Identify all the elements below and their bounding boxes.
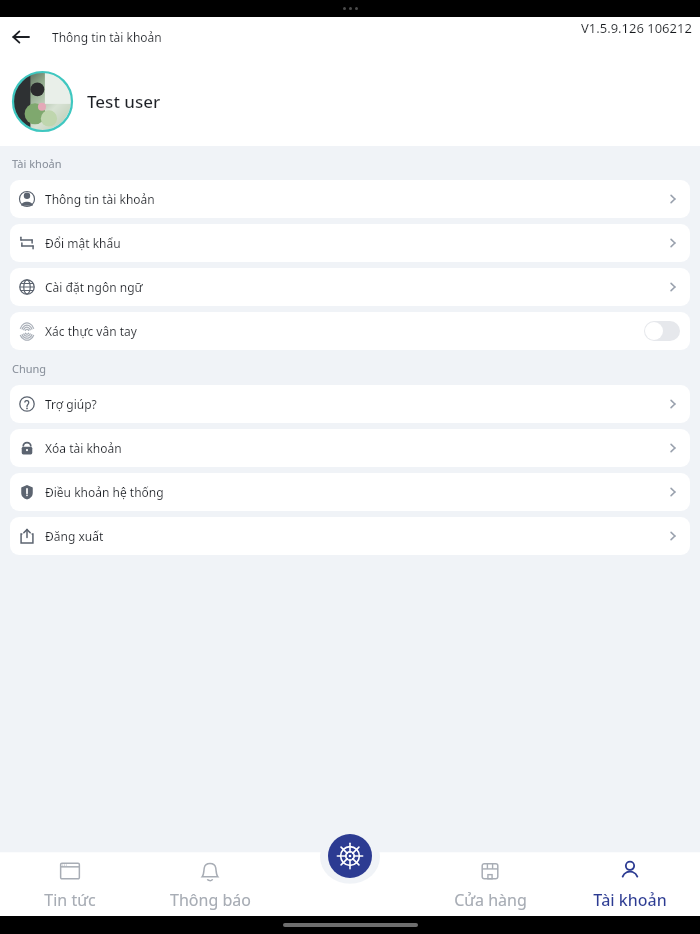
staticText: Thông tin tài khoản	[45, 191, 665, 207]
staticText: Tài khoản	[12, 156, 62, 171]
button[interactable]: Fingerprint toggle	[644, 321, 680, 341]
staticText: Cài đặt ngôn ngữ	[45, 279, 665, 295]
button[interactable]: Điều khoản hệ thống	[10, 473, 690, 511]
button[interactable]: Thông báo	[140, 854, 280, 915]
staticText: Điều khoản hệ thống	[45, 484, 665, 500]
staticText: Trợ giúp?	[45, 396, 665, 412]
staticText: Cửa hàng	[454, 889, 527, 911]
button[interactable]: Tin tức	[0, 854, 140, 915]
button[interactable]: Đổi mật khẩu	[10, 224, 690, 262]
button[interactable]: Tài khoản	[560, 854, 700, 915]
button[interactable]: Back	[0, 17, 42, 56]
staticText: Tài khoản	[593, 889, 667, 911]
staticText: Đổi mật khẩu	[45, 235, 665, 251]
staticText: Thông báo	[170, 889, 251, 911]
button[interactable]: Helm	[328, 834, 372, 878]
staticText: Test user	[87, 90, 161, 113]
button[interactable]: Trợ giúp?	[10, 385, 690, 423]
button[interactable]: Xóa tài khoản	[10, 429, 690, 467]
staticText: Chung	[12, 361, 47, 376]
button[interactable]: Test user	[0, 56, 700, 146]
staticText: V1.5.9.126 106212	[581, 19, 692, 37]
staticText: Xác thực vân tay	[45, 323, 644, 339]
button[interactable]: Đăng xuất	[10, 517, 690, 555]
staticText: Đăng xuất	[45, 528, 665, 544]
button[interactable]: Cài đặt ngôn ngữ	[10, 268, 690, 306]
button[interactable]: Cửa hàng	[420, 854, 560, 915]
staticText: Tin tức	[44, 889, 96, 911]
staticText: Xóa tài khoản	[45, 440, 665, 456]
button[interactable]: Xác thực vân tay	[10, 312, 690, 350]
staticText: Thông tin tài khoản	[52, 29, 162, 45]
button[interactable]: Thông tin tài khoản	[10, 180, 690, 218]
